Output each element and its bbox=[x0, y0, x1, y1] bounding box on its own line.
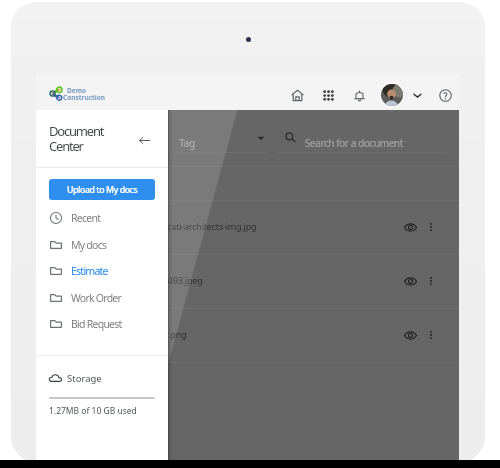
button[interactable]: My docs bbox=[36, 231, 168, 258]
staticText: Upload to My docs bbox=[67, 184, 138, 196]
button[interactable]: Notifications bbox=[345, 81, 373, 109]
button[interactable]: Floorplan.png bbox=[36, 308, 459, 362]
button[interactable]: Home bbox=[283, 81, 311, 109]
staticText: Demo bbox=[67, 86, 87, 95]
button[interactable]: Bid Request bbox=[36, 310, 168, 337]
button[interactable]: More options bbox=[422, 326, 440, 344]
button[interactable]: Apps bbox=[314, 81, 342, 109]
button[interactable]: Help bbox=[431, 81, 459, 109]
staticText: Document Center bbox=[49, 122, 104, 155]
staticText: Bid Request bbox=[71, 317, 122, 331]
staticText: Tag bbox=[179, 136, 195, 150]
staticText: Recent bbox=[71, 211, 101, 225]
button[interactable]: Preview bbox=[401, 272, 419, 290]
staticText: Work Order bbox=[71, 291, 122, 305]
button[interactable] bbox=[380, 81, 424, 108]
button[interactable]: Demo Construction bbox=[49, 86, 115, 102]
button[interactable]: Demo-Locati-architects-img.jpg bbox=[36, 200, 459, 254]
button[interactable]: Estimate bbox=[36, 257, 168, 284]
staticText: My docs bbox=[71, 238, 107, 252]
button[interactable]: Sample-0493.jpeg bbox=[36, 254, 459, 308]
button[interactable]: Preview bbox=[401, 326, 419, 344]
staticText: Sample-0493.jpeg bbox=[130, 274, 203, 286]
staticText: Estimate bbox=[71, 264, 108, 278]
button[interactable]: Preview bbox=[401, 218, 419, 236]
button[interactable]: More options bbox=[422, 218, 440, 236]
button[interactable]: More options bbox=[422, 272, 440, 290]
staticText: Search for a document bbox=[305, 136, 403, 150]
staticText: 1.27MB of 10 GB used bbox=[49, 405, 137, 417]
button[interactable]: Upload to My docs bbox=[49, 179, 155, 200]
button[interactable]: Work Order bbox=[36, 284, 168, 311]
button[interactable]: Back bbox=[134, 130, 154, 150]
staticText: Demo-Locati-architects-img.jpg bbox=[130, 220, 257, 232]
staticText: Construction bbox=[63, 93, 106, 102]
staticText: Floorplan.png bbox=[130, 328, 187, 340]
button[interactable]: Recent bbox=[36, 204, 168, 231]
staticText: Storage bbox=[67, 372, 102, 385]
